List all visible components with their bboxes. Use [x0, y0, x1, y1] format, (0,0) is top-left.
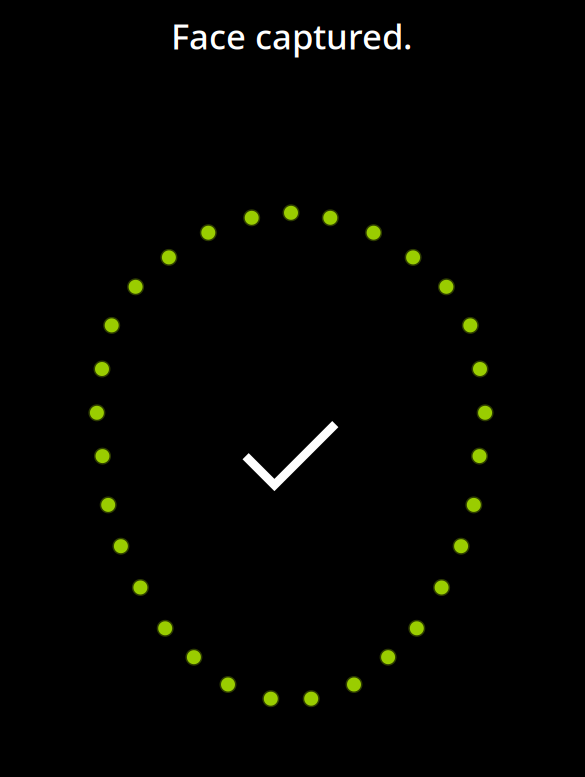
staticText: Face captured. [171, 13, 412, 59]
